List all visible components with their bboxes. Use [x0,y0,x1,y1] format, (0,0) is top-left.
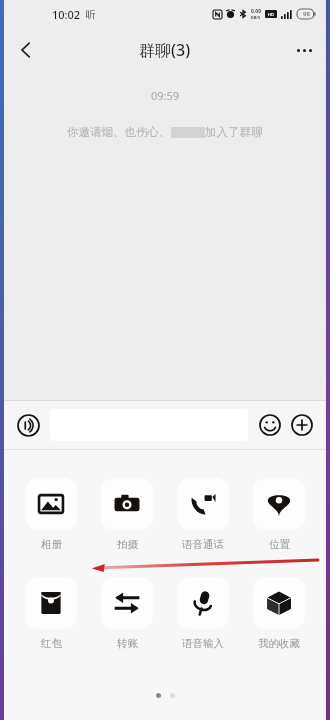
staticText: 我的收藏 [258,637,300,650]
staticText: 语音输入 [182,637,224,650]
staticText: 相册 [41,538,62,551]
button[interactable]: 位置 [244,478,314,551]
button[interactable]: 语音输入 [168,577,238,650]
staticText: 群聊(3) [139,39,191,61]
staticText: 09:59 [151,88,180,103]
button[interactable]: Add attachment [287,410,317,440]
staticText: 加入了群聊 [205,125,263,139]
button[interactable]: 红包 [16,577,86,650]
button[interactable]: Emoji [255,410,285,440]
staticText: 98 [303,10,310,18]
staticText: 听 [86,8,96,21]
staticText: HD [268,12,274,17]
staticText: 位置 [269,538,290,551]
button[interactable]: 相册 [16,478,86,551]
button[interactable]: 语音通话 [168,478,238,551]
button[interactable]: 拍摄 [92,478,162,551]
staticText: KB/S [251,15,261,20]
staticText: 红包 [41,637,62,650]
button[interactable]: Voice message [13,410,43,440]
staticText: 0.00 [251,8,261,15]
button[interactable]: More options [282,28,326,72]
staticText: 10:02 [52,7,81,22]
button[interactable]: Back [4,28,48,72]
button[interactable]: 转账 [92,577,162,650]
staticText: 语音通话 [182,538,224,551]
staticText: 拍摄 [117,538,138,551]
button[interactable]: 我的收藏 [244,577,314,650]
staticText: 转账 [117,637,138,650]
staticText: 你邀请烟、也伤心、 [67,125,171,139]
